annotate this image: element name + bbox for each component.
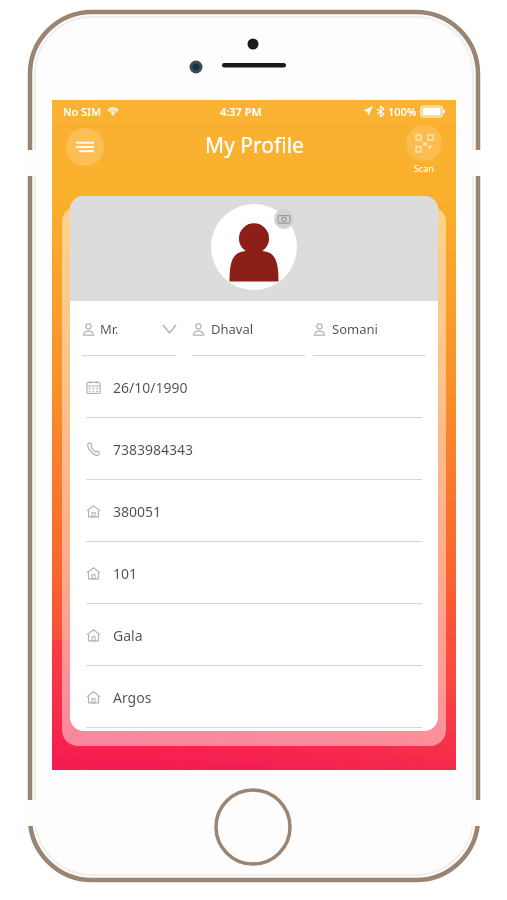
button[interactable]: 7383984343: [70, 418, 438, 480]
button[interactable]: Argos: [70, 666, 438, 728]
button[interactable]: Gala: [70, 604, 438, 666]
staticText: 26/10/1990: [113, 378, 188, 397]
staticText: No SIM: [63, 104, 102, 119]
staticText: Gala: [113, 626, 143, 645]
staticText: Argos: [113, 688, 152, 707]
button[interactable]: Menu: [66, 128, 104, 166]
staticText: 4:37 PM: [220, 104, 262, 119]
button[interactable]: Change profile photo: [211, 204, 297, 290]
staticText: Scan: [414, 162, 434, 174]
button[interactable]: Scan: [404, 125, 444, 174]
staticText: 100%: [388, 104, 417, 119]
staticText: 7383984343: [113, 440, 194, 459]
staticText: Somani: [332, 320, 378, 338]
button[interactable]: 101: [70, 542, 438, 604]
staticText: 101: [113, 564, 138, 583]
staticText: My Profile: [205, 131, 304, 160]
button[interactable]: Dhaval: [192, 301, 305, 356]
button[interactable]: Mr.: [82, 301, 184, 356]
staticText: Mr.: [100, 320, 119, 338]
button[interactable]: 26/10/1990: [70, 356, 438, 418]
staticText: Dhaval: [211, 320, 254, 338]
button[interactable]: 380051: [70, 480, 438, 542]
button[interactable]: Somani: [313, 301, 426, 356]
staticText: 380051: [113, 502, 162, 521]
